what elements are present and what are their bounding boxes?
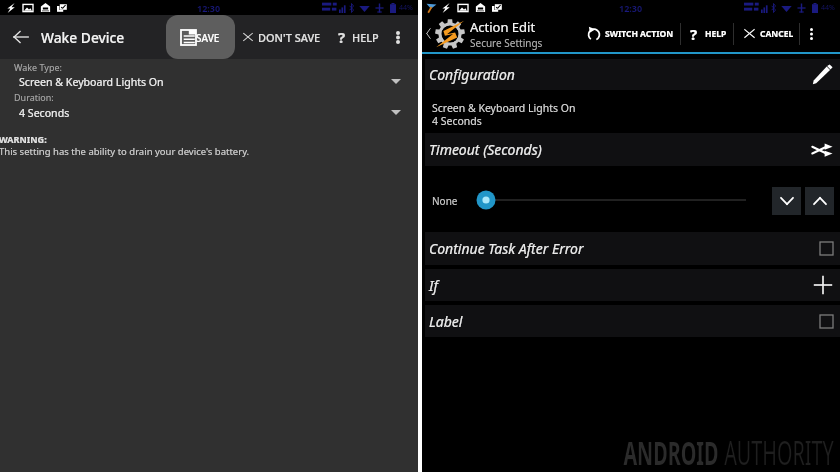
staticText: Timeout (Seconds) (429, 140, 542, 159)
staticText: WARNING: (0, 133, 47, 145)
staticText: ? (338, 27, 346, 47)
staticText: Secure Settings (470, 36, 543, 50)
staticText: Wake Device (41, 28, 125, 47)
staticText: AUTHORITY (724, 430, 834, 472)
staticText: HELP (352, 30, 379, 45)
staticText: ? (690, 24, 698, 44)
button[interactable]: Back (0, 15, 41, 59)
staticText: SAVE (196, 31, 220, 45)
button[interactable]: Screen & Keyboard Lights On (0, 73, 418, 90)
staticText: Duration: (14, 91, 54, 103)
button[interactable]: 4 Seconds (0, 104, 418, 121)
button[interactable]: Increase (805, 187, 834, 215)
staticText: ANDROID (623, 430, 724, 472)
staticText: If (429, 276, 438, 295)
button[interactable]: Label (425, 305, 840, 337)
staticText: 4 Seconds (19, 106, 70, 120)
staticText: This setting has the ability to drain yo… (0, 145, 250, 158)
staticText: HELP (705, 28, 727, 40)
staticText: Continue Task After Error (429, 239, 584, 258)
button[interactable]: DON'T SAVE (242, 15, 321, 59)
staticText: 44% (821, 3, 835, 13)
button[interactable]: ? (690, 15, 727, 52)
staticText: None (432, 194, 458, 208)
staticText: 12:30 (619, 2, 643, 14)
button[interactable]: If (425, 269, 840, 301)
button[interactable]: SWITCH ACTION (586, 15, 674, 52)
staticText: 44% (399, 3, 413, 13)
staticText: Screen & Keyboard Lights On (19, 75, 164, 89)
button[interactable]: Continue Task After Error (425, 232, 840, 265)
button[interactable]: More options (387, 15, 408, 59)
staticText: 4 Seconds (432, 114, 482, 128)
staticText: CANCEL (760, 28, 794, 40)
staticText: Configuration (429, 65, 515, 84)
button[interactable]: Up (422, 15, 435, 52)
button[interactable]: Timeout (Seconds) (425, 133, 840, 166)
staticText: Wake Type: (14, 61, 62, 73)
button[interactable]: ? (338, 15, 379, 59)
staticText: DON'T SAVE (258, 30, 321, 45)
staticText: Label (429, 312, 463, 331)
button[interactable]: SAVE (166, 15, 235, 59)
button[interactable]: Configuration (425, 59, 840, 90)
staticText: SWITCH ACTION (605, 28, 674, 40)
button[interactable]: Decrease (772, 187, 801, 215)
button[interactable]: More options (800, 15, 823, 52)
button[interactable]: CANCEL (743, 15, 794, 52)
staticText: 12:30 (197, 2, 221, 14)
staticText: Screen & Keyboard Lights On (432, 101, 576, 115)
staticText: Action Edit (470, 18, 536, 36)
